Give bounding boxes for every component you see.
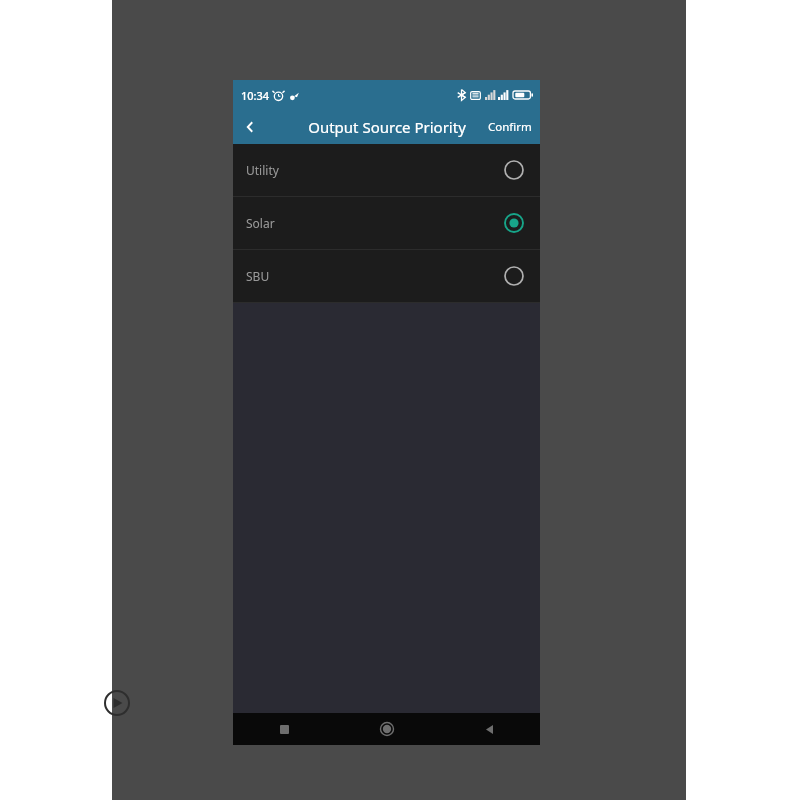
button[interactable]: SBU: [233, 250, 540, 302]
button[interactable]: Utility: [233, 144, 540, 196]
button[interactable]: Back: [438, 713, 540, 745]
button[interactable]: Confirm: [480, 110, 540, 144]
staticText: 10:34: [241, 88, 270, 103]
staticText: Output Source Priority: [308, 117, 466, 137]
staticText: Utility: [246, 162, 504, 178]
staticText: Solar: [246, 215, 504, 231]
button[interactable]: Recents: [233, 713, 336, 745]
button[interactable]: Solar: [233, 197, 540, 249]
staticText: SBU: [246, 268, 504, 284]
staticText: Confirm: [488, 119, 532, 135]
button[interactable]: Back: [233, 110, 267, 144]
button[interactable]: Home: [336, 713, 438, 745]
